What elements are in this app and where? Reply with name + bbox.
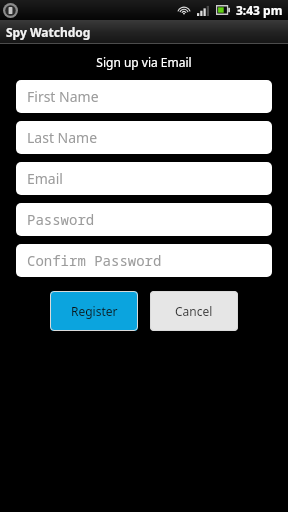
staticText: First Name (27, 87, 99, 106)
staticText: Sign up via Email (0, 54, 288, 70)
button[interactable]: Register (50, 291, 138, 331)
staticText: Last Name (27, 128, 98, 147)
other: App notification (3, 3, 18, 18)
staticText: 3:43 pm (236, 2, 283, 18)
staticText: Cancel (175, 303, 213, 319)
staticText: Email (27, 169, 63, 188)
button[interactable]: Confirm Password (16, 244, 272, 277)
button[interactable]: Password (16, 203, 272, 236)
button[interactable]: Last Name (16, 121, 272, 154)
staticText: Register (71, 303, 118, 319)
button[interactable]: Cancel (150, 291, 238, 331)
button[interactable]: First Name (16, 80, 272, 113)
button[interactable]: Email (16, 162, 272, 195)
staticText: Spy Watchdog (6, 24, 91, 40)
staticText: Confirm Password (27, 251, 162, 270)
staticText: Password (27, 210, 95, 229)
